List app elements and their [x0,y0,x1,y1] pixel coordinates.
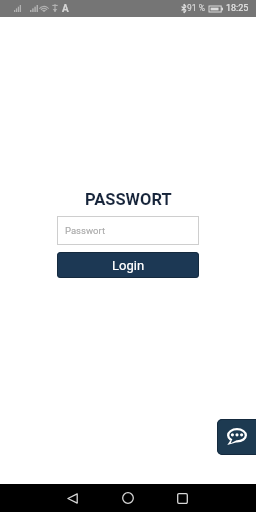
button[interactable]: Back [55,484,90,512]
staticText: PASSWORT [85,190,172,209]
staticText: 18:25 [226,3,249,14]
button[interactable]: Recent apps [165,484,200,512]
staticText: 91 % [187,3,205,13]
button[interactable]: Chat [217,419,256,455]
staticText: A [62,3,69,15]
button[interactable]: Passwort [57,216,199,245]
staticText: Login [112,258,145,273]
button[interactable]: Login [57,252,199,278]
staticText: Passwort [65,225,106,236]
button[interactable]: Home [110,484,145,512]
